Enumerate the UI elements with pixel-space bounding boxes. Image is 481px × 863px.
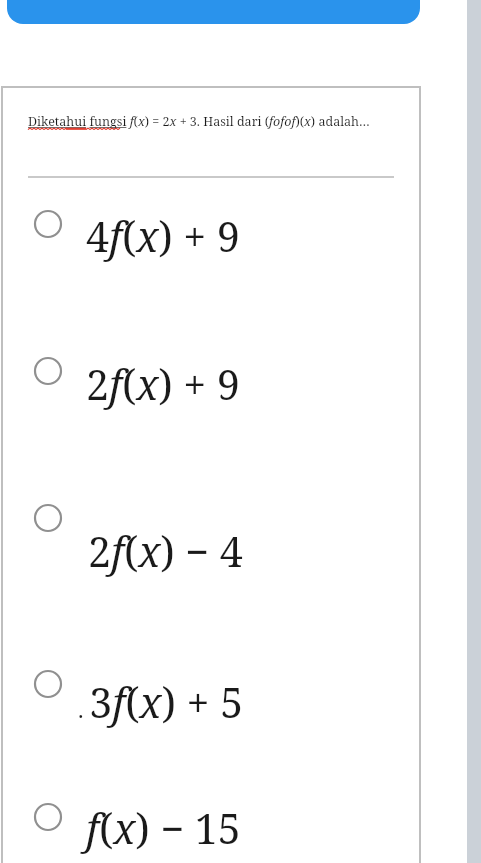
- button[interactable]: Answer option: [34, 210, 62, 238]
- button[interactable]: f(x) − 15: [86, 800, 241, 856]
- staticText: 2f(x) + 9: [86, 356, 240, 412]
- button[interactable]: Answer option: [34, 504, 62, 532]
- staticText: Diketahui fungsi f(x) = 2x + 3. Hasil da…: [28, 113, 370, 130]
- button[interactable]: Answer option: [34, 670, 62, 698]
- button[interactable]: DAFTAR SOAL: [7, 0, 420, 24]
- button[interactable]: 2f(x) + 9: [86, 356, 240, 412]
- staticText: f(x) − 15: [86, 800, 241, 856]
- button[interactable]: 4f(x) + 9: [86, 208, 240, 264]
- button[interactable]: Answer option: [34, 803, 62, 831]
- button[interactable]: Answer option: [34, 357, 62, 385]
- staticText: 2f(x) − 4: [88, 523, 243, 579]
- button[interactable]: 2f(x) − 4: [88, 523, 243, 579]
- staticText: 4f(x) + 9: [86, 208, 240, 264]
- staticText: . 3f(x) + 5: [78, 674, 244, 730]
- button[interactable]: . 3f(x) + 5: [78, 674, 244, 730]
